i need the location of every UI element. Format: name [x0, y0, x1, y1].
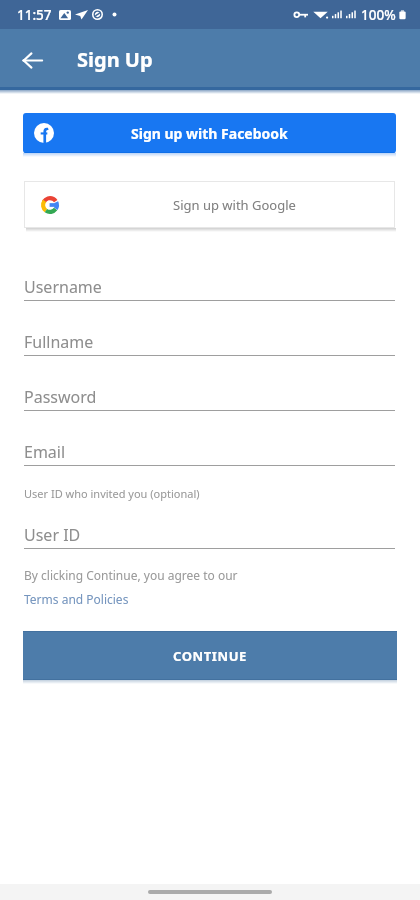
button[interactable]: Back: [8, 36, 56, 84]
button[interactable]: Terms and Policies: [24, 591, 129, 607]
staticText: Username: [24, 276, 102, 298]
staticText: By clicking Continue, you agree to our: [24, 567, 238, 583]
button[interactable]: Password: [24, 370, 395, 411]
button[interactable]: Sign up with Google: [24, 181, 395, 228]
staticText: 100%: [361, 6, 396, 24]
staticText: Email: [24, 441, 66, 463]
staticText: Password: [24, 386, 97, 408]
button[interactable]: Sign up with Facebook: [23, 113, 396, 153]
staticText: Sign up with Google: [173, 196, 296, 214]
button[interactable]: Username: [24, 260, 395, 301]
staticText: CONTINUE: [173, 647, 247, 665]
button[interactable]: Fullname: [24, 315, 395, 356]
staticText: Fullname: [24, 331, 94, 353]
staticText: User ID: [24, 524, 81, 546]
button[interactable]: CONTINUE: [23, 631, 397, 680]
button[interactable]: Email: [24, 425, 395, 466]
staticText: Sign Up: [77, 46, 153, 73]
button[interactable]: User ID: [24, 508, 395, 549]
staticText: Sign up with Facebook: [131, 124, 288, 143]
staticText: 11:57: [17, 6, 52, 24]
staticText: User ID who invited you (optional): [24, 486, 200, 501]
